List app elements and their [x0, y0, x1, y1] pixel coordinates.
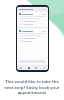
button[interactable]: Profile [41, 65, 47, 70]
button[interactable]: This would like to take the next step? E… [3, 79, 61, 95]
button[interactable] [20, 37, 45, 39]
button[interactable]: Home [18, 65, 24, 70]
button[interactable] [20, 20, 45, 22]
button[interactable]: Appointments [26, 65, 32, 70]
button[interactable] [20, 40, 45, 42]
button[interactable] [17, 7, 48, 12]
staticText: This would like to take the next step? E… [3, 79, 61, 95]
button[interactable] [19, 30, 46, 32]
button[interactable]: Messages [33, 65, 39, 70]
button[interactable] [19, 13, 46, 15]
button[interactable] [20, 23, 45, 25]
